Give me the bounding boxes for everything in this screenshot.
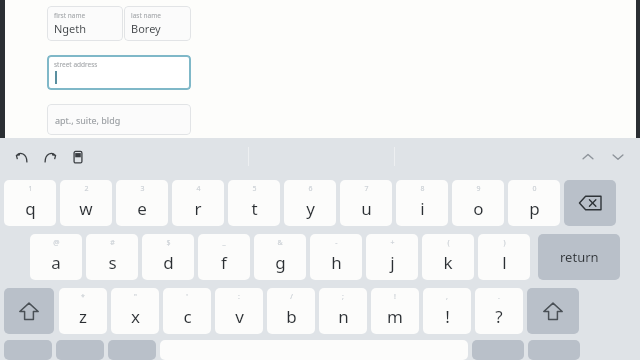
staticText: first name [54,11,86,20]
button[interactable]: ' [163,288,211,334]
button[interactable]: street address [47,55,191,90]
button[interactable]: 7 [340,180,392,226]
staticText: a [51,251,61,274]
button[interactable]: " [111,288,159,334]
staticText: r [194,197,202,220]
button[interactable]: Comma [472,340,524,360]
button[interactable]: / [267,288,315,334]
button[interactable]: _ [198,234,250,280]
staticText: u [361,197,372,220]
button[interactable]: Shift [527,288,579,334]
button[interactable]: * [59,288,107,334]
button[interactable]: Clipboard [68,147,88,167]
button[interactable]: : [215,288,263,334]
staticText: 2 [84,184,89,194]
staticText: - [335,238,338,248]
button[interactable]: + [366,234,418,280]
button[interactable]: ) [478,234,530,280]
staticText: : [238,292,240,302]
button[interactable]: Emoji [56,340,104,360]
staticText: y [306,197,315,220]
staticText: / [290,292,293,302]
button[interactable]: Next [608,147,628,167]
button[interactable]: 8 [396,180,448,226]
staticText: d [163,251,174,274]
staticText: @ [53,238,60,248]
button[interactable]: Undo [12,147,32,167]
button[interactable]: . [475,288,523,334]
staticText: . [498,292,500,302]
button[interactable]: ( [422,234,474,280]
staticText: j [390,251,395,274]
staticText: 3 [140,184,145,194]
staticText: b [286,305,297,328]
staticText: e [137,197,147,220]
button[interactable]: 0 [508,180,560,226]
staticText: " [134,292,137,302]
button[interactable]: Return [538,234,620,280]
button[interactable]: last name [124,6,191,41]
staticText: 9 [476,184,481,194]
button[interactable]: & [254,234,306,280]
staticText: h [331,251,342,274]
staticText: q [25,197,36,220]
staticText: ? [495,305,503,328]
staticText: p [529,197,540,220]
button[interactable]: 5 [228,180,280,226]
button[interactable]: Symbols [4,340,52,360]
staticText: n [338,305,349,328]
staticText: 0 [532,184,537,194]
button[interactable]: Language [108,340,156,360]
staticText: ) [503,238,506,248]
staticText: ( [447,238,450,248]
button[interactable]: $ [142,234,194,280]
button[interactable]: @ [30,234,82,280]
staticText: + [390,238,395,248]
button[interactable]: ! [371,288,419,334]
button[interactable]: Shift [4,288,54,334]
staticText: 5 [252,184,257,194]
button[interactable]: Redo [40,147,60,167]
staticText: _ [222,238,226,248]
staticText: l [502,251,507,274]
staticText: o [473,197,484,220]
staticText: f [221,251,227,274]
button[interactable]: , [423,288,471,334]
button[interactable]: 9 [452,180,504,226]
staticText: 8 [420,184,425,194]
staticText: Ngeth [54,21,87,36]
staticText: street address [54,60,98,69]
staticText: last name [131,11,161,20]
staticText: Borey [131,21,161,36]
staticText: , [446,292,448,302]
staticText: 7 [364,184,369,194]
button[interactable]: 6 [284,180,336,226]
button[interactable]: - [310,234,362,280]
button[interactable]: 2 [60,180,112,226]
button[interactable]: # [86,234,138,280]
staticText: 6 [308,184,313,194]
button[interactable]: 1 [4,180,56,226]
button[interactable]: Previous [578,147,598,167]
staticText: 1 [28,184,33,194]
staticText: * [81,292,85,302]
staticText: ! [394,292,396,302]
staticText: ' [186,292,188,302]
button[interactable]: first name [47,6,123,41]
button[interactable]: Backspace [564,180,616,226]
staticText: # [110,238,115,248]
staticText: c [183,305,192,328]
staticText: ; [342,292,344,302]
staticText: v [235,305,244,328]
staticText: t [251,197,258,220]
button[interactable]: Period [528,340,580,360]
button[interactable]: ; [319,288,367,334]
staticText: ! [445,305,450,328]
staticText: x [131,305,140,328]
button[interactable]: 4 [172,180,224,226]
button[interactable]: apt., suite, bldg [47,104,191,135]
staticText: apt., suite, bldg [55,114,121,126]
button[interactable]: 3 [116,180,168,226]
staticText: s [108,251,117,274]
